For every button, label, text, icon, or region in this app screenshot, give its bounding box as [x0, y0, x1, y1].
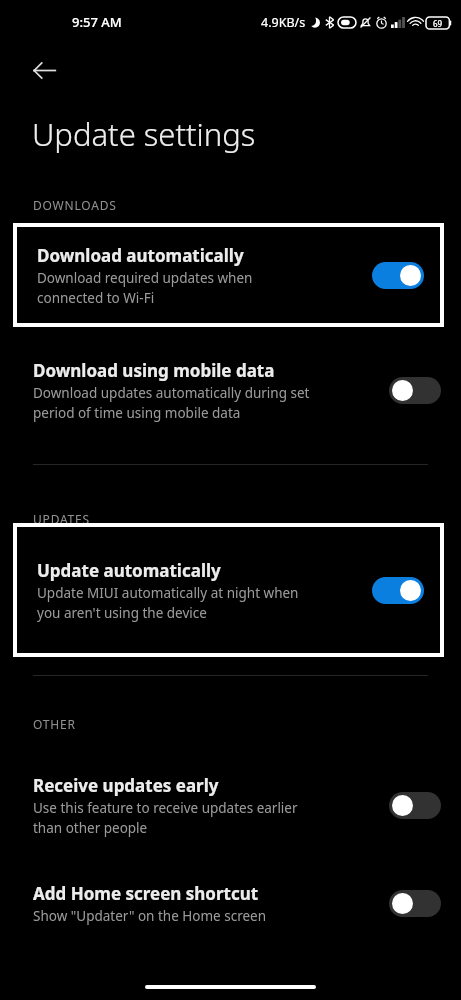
staticText: 69: [433, 18, 443, 29]
staticText: Use this feature to receive updates earl…: [33, 799, 298, 837]
staticText: Download using mobile data: [33, 359, 275, 382]
staticText: Update automatically: [37, 559, 221, 582]
staticText: OTHER: [33, 716, 76, 732]
staticText: 4.9KB/s: [261, 14, 306, 31]
staticText: Update settings: [32, 113, 256, 155]
button[interactable]: Switch off: [389, 377, 441, 404]
staticText: Receive updates early: [33, 774, 219, 797]
staticText: Add Home screen shortcut: [33, 882, 259, 905]
button[interactable]: Download using mobile data: [0, 345, 461, 435]
button[interactable]: Switch on: [372, 577, 424, 604]
staticText: Show "Updater" on the Home screen: [33, 907, 267, 925]
button[interactable]: Switch on: [372, 262, 424, 289]
button[interactable]: Download automatically: [17, 227, 440, 323]
button[interactable]: Switch off: [389, 792, 441, 819]
staticText: UPDATES: [33, 511, 90, 527]
button[interactable]: Switch off: [389, 890, 441, 917]
staticText: 9:57 AM: [72, 13, 122, 31]
staticText: DOWNLOADS: [33, 197, 117, 213]
button[interactable]: Back: [22, 48, 66, 92]
button[interactable]: Receive updates early: [0, 760, 461, 850]
staticText: Download updates automatically during se…: [33, 384, 310, 422]
staticText: Download automatically: [37, 244, 244, 267]
staticText: Update MIUI automatically at night when …: [37, 584, 299, 622]
button[interactable]: Add Home screen shortcut: [0, 868, 461, 938]
staticText: Download required updates when connected…: [37, 269, 253, 307]
button[interactable]: Update automatically: [17, 527, 440, 653]
